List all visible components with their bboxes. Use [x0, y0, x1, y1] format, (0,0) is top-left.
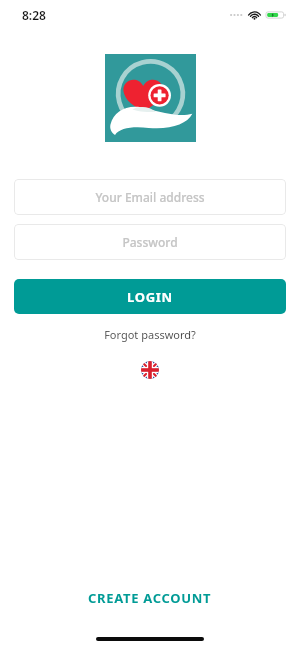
button[interactable]: Change language — [141, 361, 159, 379]
button[interactable]: CREATE ACCOUNT — [0, 585, 300, 611]
staticText: Forgot password? — [104, 327, 196, 342]
staticText: LOGIN — [127, 288, 173, 306]
button[interactable]: LOGIN — [14, 279, 286, 314]
staticText: Password — [122, 234, 178, 250]
staticText: 8:28 — [22, 7, 46, 23]
button[interactable]: Your Email address — [14, 179, 286, 215]
button[interactable]: Password — [14, 224, 286, 260]
button[interactable]: Forgot password? — [0, 324, 300, 345]
staticText: Your Email address — [95, 189, 205, 205]
staticText: CREATE ACCOUNT — [88, 589, 212, 607]
